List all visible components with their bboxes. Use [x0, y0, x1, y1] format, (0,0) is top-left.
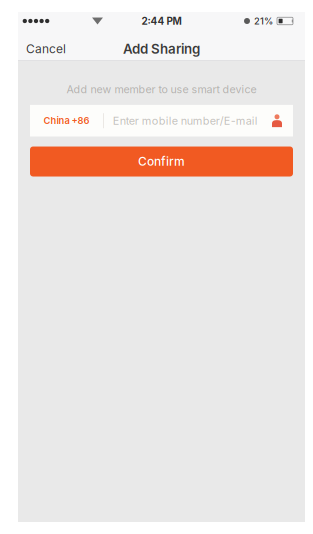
- button[interactable]: Pick from contacts: [272, 114, 293, 127]
- button[interactable]: Confirm: [30, 146, 293, 176]
- staticText: Add Sharing: [123, 41, 200, 57]
- staticText: Add new member to use smart device: [66, 83, 256, 96]
- staticText: 2:44 PM: [141, 15, 181, 27]
- staticText: Confirm: [138, 154, 185, 169]
- staticText: 21%: [254, 15, 273, 27]
- staticText: Cancel: [26, 42, 66, 56]
- staticText: China +86: [43, 115, 89, 126]
- button[interactable]: China +86: [30, 105, 103, 136]
- button[interactable]: Cancel: [18, 30, 76, 61]
- staticText: Enter mobile number/E-mail: [113, 114, 258, 127]
